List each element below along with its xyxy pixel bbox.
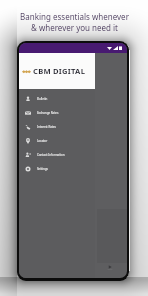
button[interactable]: Interest Rates [19,120,95,134]
staticText: Bulletin [37,97,48,101]
button[interactable]: Bulletin [19,92,95,106]
button[interactable]: Settings [19,162,95,176]
staticText: CBM DIGITAL [33,66,86,76]
staticText: Settings [37,167,48,171]
button[interactable]: Exchange Rates [19,106,95,120]
staticText: Locator [37,139,48,143]
staticText: Interest Rates [37,125,56,129]
staticText: Contact Information [37,153,65,157]
staticText: Banking essentials whenever [20,11,129,22]
button[interactable]: Contact Information [19,148,95,162]
button[interactable]: Locator [19,134,95,148]
staticText: Exchange Rates [37,111,59,115]
staticText: & wherever you need it [31,22,118,33]
